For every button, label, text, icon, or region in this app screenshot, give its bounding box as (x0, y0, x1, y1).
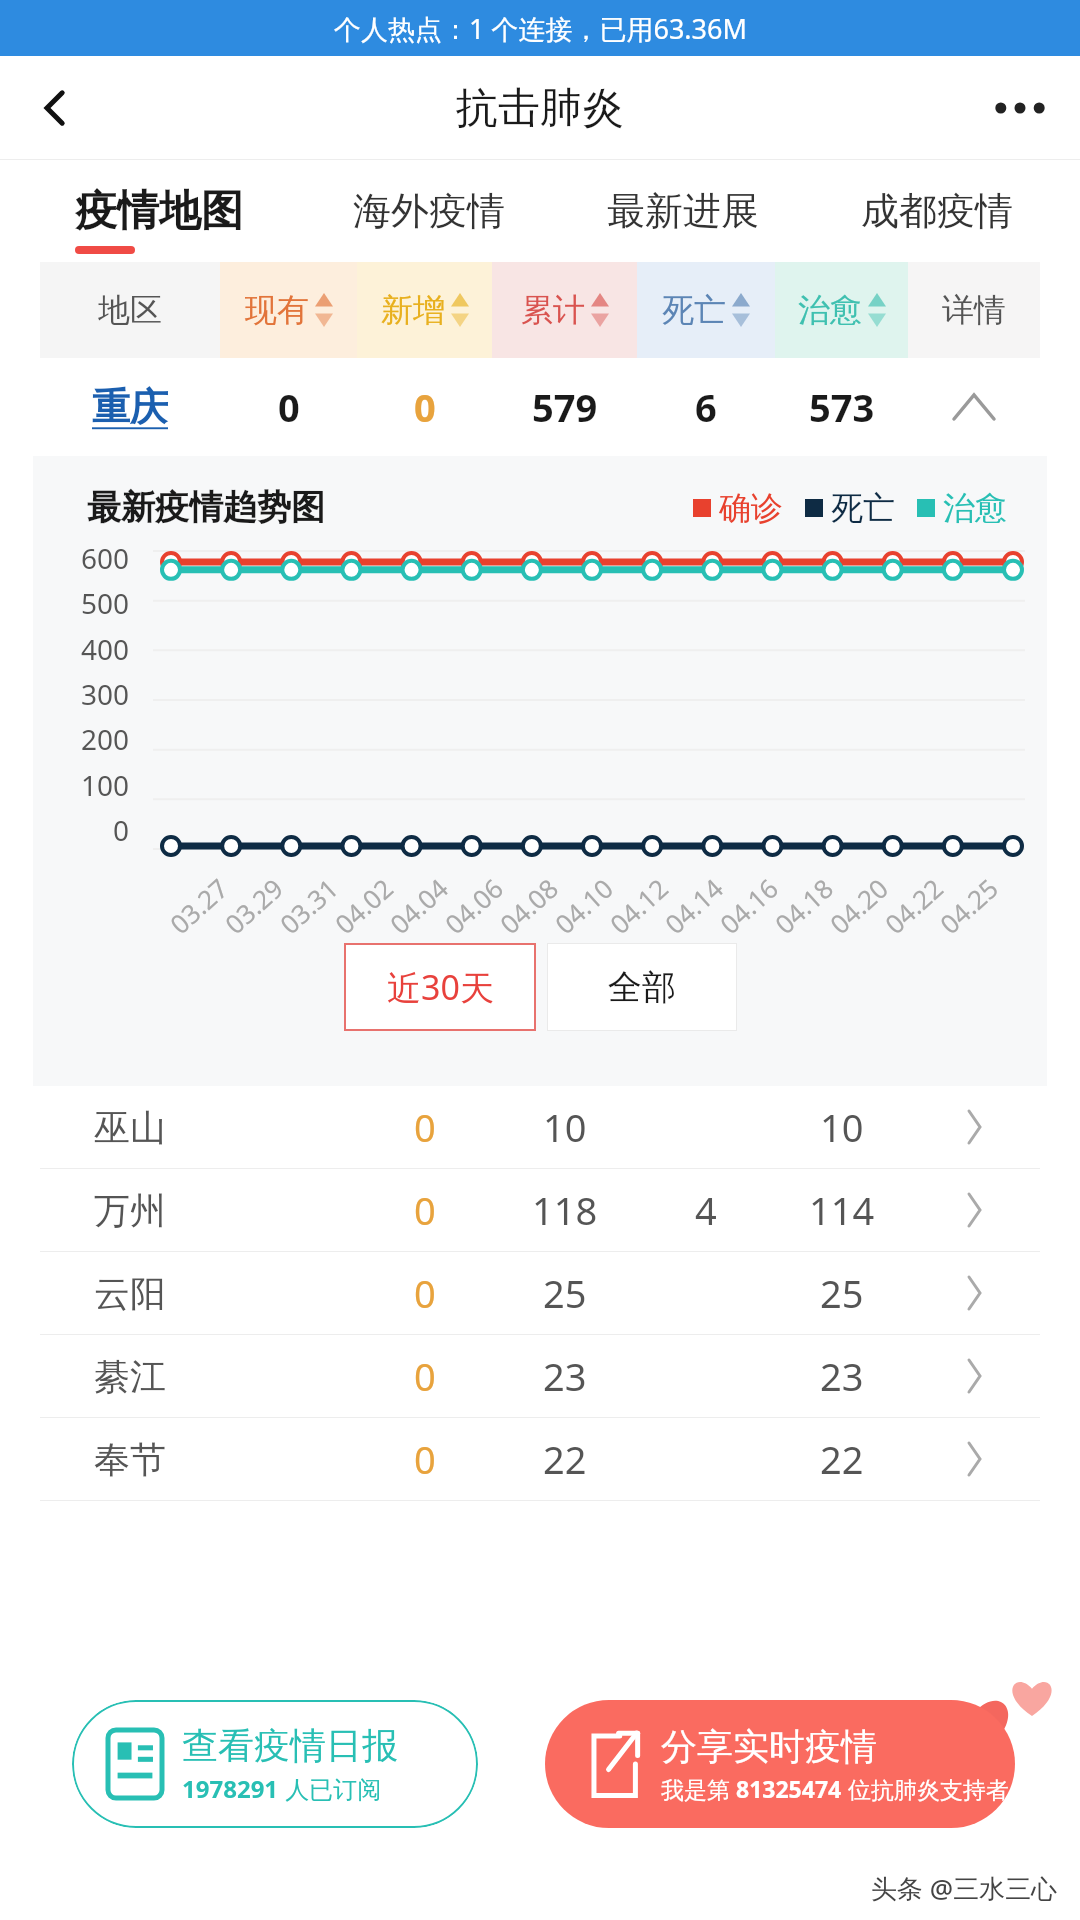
button[interactable]: 疫情地图 (16, 160, 302, 262)
staticText: 22 (543, 1433, 587, 1485)
staticText: 新增 (381, 290, 445, 330)
staticText: 位抗肺炎支持者 (842, 1773, 1009, 1804)
button[interactable]: 地区 (40, 262, 220, 358)
staticText: 25 (543, 1267, 587, 1319)
button[interactable]: 现有 (220, 262, 357, 358)
staticText: 23 (543, 1350, 587, 1402)
button[interactable]: 重庆 (0, 358, 1080, 456)
staticText: 治愈 (798, 290, 862, 330)
staticText: 地区 (98, 290, 162, 330)
staticText: 04.14 (657, 870, 730, 941)
staticText: 头条 @三水三心 (871, 1870, 1058, 1906)
staticText: 海外疫情 (353, 187, 505, 235)
staticText: 10 (543, 1101, 587, 1153)
button[interactable]: 云阳 (0, 1252, 1080, 1334)
staticText: 累计 (521, 290, 585, 330)
staticText: 600 (80, 539, 129, 577)
staticText: 03.29 (217, 870, 290, 941)
button[interactable]: 最新进展 (556, 160, 810, 262)
staticText: 81325474 (736, 1773, 842, 1804)
staticText: 25 (820, 1267, 864, 1319)
staticText: 04.16 (712, 870, 785, 941)
staticText: 最新进展 (607, 187, 759, 235)
staticText: 04.06 (437, 870, 510, 941)
staticText: 治愈 (943, 488, 1007, 528)
staticText: 0 (414, 1184, 436, 1236)
staticText: 死亡 (831, 488, 895, 528)
staticText: 04.04 (382, 870, 455, 941)
staticText: 奉节 (94, 1437, 166, 1482)
staticText: 重庆 (92, 383, 168, 431)
staticText: 10 (820, 1101, 864, 1153)
button[interactable]: 分享实时疫情 (545, 1700, 1015, 1828)
staticText: 巫山 (94, 1105, 166, 1150)
button[interactable]: 全部 (547, 943, 737, 1031)
button[interactable]: 成都疫情 (810, 160, 1064, 262)
staticText: 04.22 (877, 870, 950, 941)
staticText: 22 (820, 1433, 864, 1485)
staticText: 万州 (94, 1188, 166, 1233)
staticText: 详情 (942, 290, 1006, 330)
staticText: 100 (80, 766, 129, 804)
staticText: 04.12 (602, 870, 675, 941)
staticText: 0 (414, 1101, 436, 1153)
button[interactable]: 死亡 (637, 262, 775, 358)
button[interactable]: 近30天 (344, 943, 536, 1031)
button[interactable]: 累计 (492, 262, 637, 358)
button[interactable]: 海外疫情 (302, 160, 556, 262)
button[interactable]: 巫山 (0, 1086, 1080, 1168)
staticText: 綦江 (94, 1354, 166, 1399)
staticText: 确诊 (719, 488, 783, 528)
button[interactable]: 万州 (0, 1169, 1080, 1251)
staticText: 现有 (245, 290, 309, 330)
staticText: 04.08 (492, 870, 565, 941)
staticText: 1978291 (182, 1772, 279, 1805)
staticText: 个人热点：1 个连接，已用63.36M (334, 10, 747, 47)
staticText: 成都疫情 (861, 187, 1013, 235)
staticText: 300 (80, 675, 129, 713)
staticText: 03.31 (272, 870, 345, 941)
staticText: 23 (820, 1350, 864, 1402)
staticText: 0 (414, 1350, 436, 1402)
staticText: 最新疫情趋势图 (87, 486, 325, 529)
staticText: 04.02 (327, 870, 400, 941)
staticText: 04.10 (547, 870, 620, 941)
staticText: 6 (695, 381, 717, 433)
button[interactable]: 查看疫情日报 (72, 1700, 478, 1828)
staticText: 03.27 (162, 870, 235, 941)
staticText: 04.25 (932, 870, 1005, 941)
staticText: 4 (695, 1184, 717, 1236)
staticText: 573 (809, 381, 875, 433)
staticText: 云阳 (94, 1271, 166, 1316)
staticText: 579 (532, 381, 598, 433)
staticText: 查看疫情日报 (182, 1723, 398, 1768)
staticText: 死亡 (662, 290, 726, 330)
staticText: 118 (532, 1184, 598, 1236)
button[interactable]: 详情 (908, 262, 1040, 358)
staticText: 0 (278, 381, 300, 433)
staticText: 0 (414, 381, 436, 433)
staticText: 我是第 (661, 1773, 736, 1804)
staticText: 0 (112, 811, 129, 849)
staticText: 04.20 (822, 870, 895, 941)
staticText: 抗击肺炎 (456, 82, 624, 135)
button[interactable]: 新增 (357, 262, 492, 358)
staticText: 分享实时疫情 (661, 1724, 877, 1769)
staticText: 200 (80, 720, 129, 758)
button[interactable]: Back (16, 69, 94, 147)
button[interactable]: 綦江 (0, 1335, 1080, 1417)
staticText: 114 (809, 1184, 875, 1236)
staticText: 0 (414, 1267, 436, 1319)
staticText: 全部 (608, 966, 676, 1009)
staticText: 近30天 (387, 964, 494, 1010)
staticText: 400 (80, 630, 129, 668)
staticText: 0 (414, 1433, 436, 1485)
staticText: 人已订阅 (279, 1772, 382, 1805)
staticText: 500 (80, 584, 129, 622)
staticText: 疫情地图 (75, 185, 243, 238)
button[interactable]: 治愈 (775, 262, 908, 358)
button[interactable]: 奉节 (0, 1418, 1080, 1500)
button[interactable]: More options (980, 68, 1060, 148)
staticText: 04.18 (767, 870, 840, 941)
